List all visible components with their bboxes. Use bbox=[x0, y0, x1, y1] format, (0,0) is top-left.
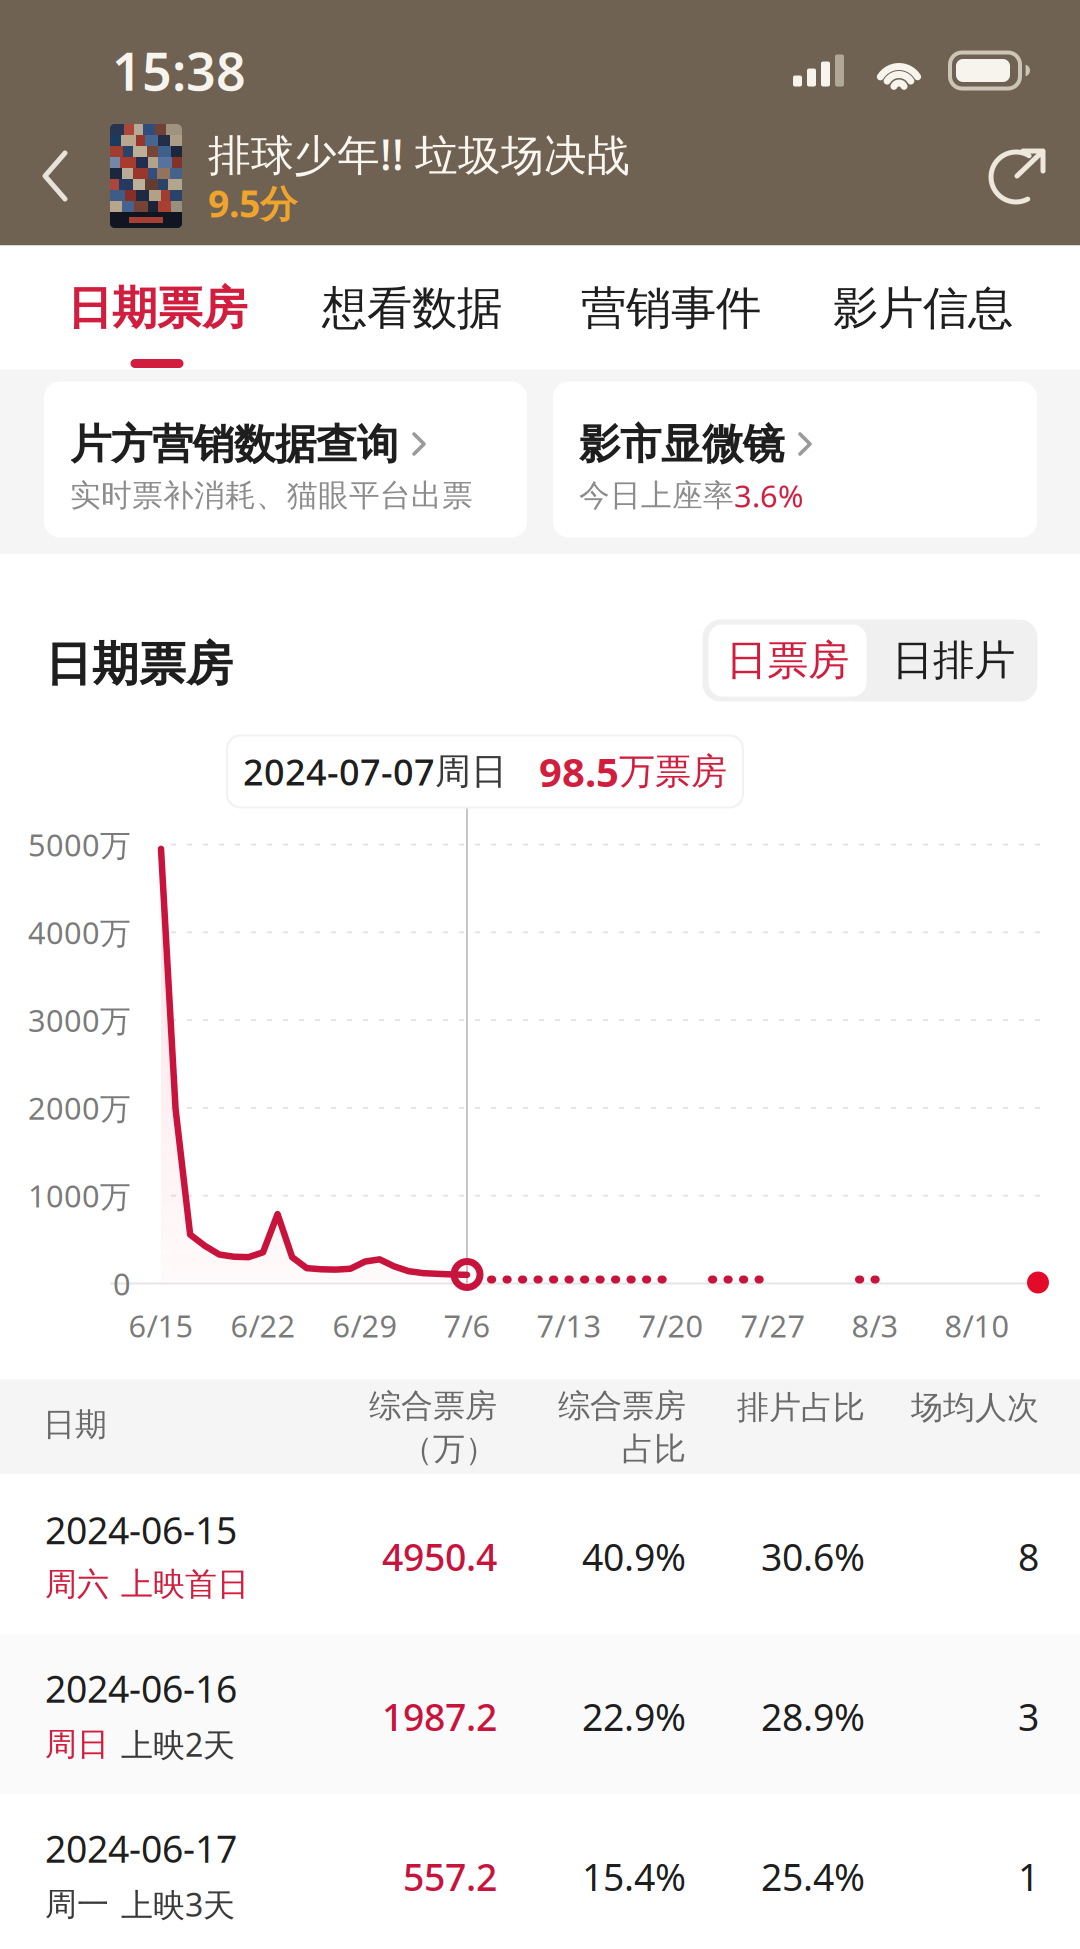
staticText: 15:38 bbox=[112, 36, 246, 105]
staticText: 2000万 bbox=[28, 1087, 131, 1128]
staticText: 日期票房 bbox=[67, 281, 247, 336]
button[interactable]: 2024-06-16 bbox=[0, 1634, 1080, 1794]
staticText: 上映首日 bbox=[121, 1565, 249, 1604]
staticText: 想看数据 bbox=[322, 281, 502, 336]
staticText: 周一 bbox=[45, 1885, 109, 1924]
staticText: 1000万 bbox=[28, 1175, 131, 1216]
staticText: 25.4% bbox=[761, 1852, 865, 1901]
staticText: 9.5分 bbox=[208, 178, 297, 228]
button[interactable]: 片方营销数据查询 bbox=[44, 381, 527, 537]
button[interactable]: 返回 bbox=[0, 106, 110, 245]
button[interactable]: 影片信息 bbox=[843, 245, 1003, 369]
staticText: 今日上座率 bbox=[579, 477, 734, 514]
staticText: 排片占比 bbox=[737, 1388, 865, 1427]
staticText: 7/27 bbox=[740, 1305, 805, 1346]
staticText: 2024-06-17 bbox=[45, 1823, 237, 1873]
staticText: 4950.4 bbox=[382, 1532, 497, 1581]
staticText: 万票房 bbox=[619, 749, 727, 794]
staticText: 7/13 bbox=[536, 1305, 601, 1346]
staticText: 片方营销数据查询 bbox=[70, 419, 398, 470]
staticText: 营销事件 bbox=[581, 281, 761, 336]
button[interactable]: 2024-06-15 bbox=[0, 1474, 1080, 1634]
staticText: 8/10 bbox=[944, 1305, 1009, 1346]
staticText: 占比 bbox=[622, 1429, 686, 1469]
staticText: 4000万 bbox=[28, 912, 131, 953]
staticText: 综合票房 bbox=[558, 1386, 686, 1425]
button[interactable]: 2024-06-17 bbox=[0, 1794, 1080, 1949]
staticText: 98.5 bbox=[539, 745, 619, 798]
staticText: 7/6 bbox=[443, 1305, 490, 1346]
button[interactable]: 日期票房 bbox=[77, 245, 237, 369]
staticText: 2024-06-15 bbox=[45, 1505, 237, 1555]
staticText: 3.6% bbox=[734, 475, 803, 516]
staticText: 7/20 bbox=[638, 1305, 703, 1346]
staticText: 上映3天 bbox=[121, 1883, 235, 1925]
staticText: 2024-07-07 bbox=[243, 748, 435, 795]
button[interactable]: 分享 bbox=[962, 106, 1080, 245]
staticText: 22.9% bbox=[582, 1692, 686, 1741]
staticText: 影片信息 bbox=[833, 281, 1013, 336]
staticText: 实时票补消耗、猫眼平台出票 bbox=[70, 477, 473, 514]
staticText: 综合票房 bbox=[369, 1386, 497, 1425]
staticText: 8/3 bbox=[851, 1305, 898, 1346]
staticText: 场均人次 bbox=[911, 1388, 1039, 1427]
staticText: 日排片 bbox=[892, 635, 1015, 686]
staticText: 3000万 bbox=[28, 1000, 131, 1040]
staticText: 日票房 bbox=[726, 635, 849, 686]
staticText: 40.9% bbox=[582, 1532, 686, 1581]
staticText: 影市显微镜 bbox=[579, 419, 784, 470]
staticText: 1 bbox=[1018, 1852, 1039, 1901]
staticText: 排球少年!! 垃圾场决战 bbox=[208, 126, 630, 182]
button[interactable]: 日排片 bbox=[874, 624, 1033, 696]
staticText: 3 bbox=[1018, 1692, 1039, 1741]
staticText: 28.9% bbox=[761, 1692, 865, 1741]
staticText: 上映2天 bbox=[121, 1723, 235, 1765]
staticText: 日期票房 bbox=[45, 636, 233, 693]
staticText: 周日 bbox=[435, 749, 507, 794]
staticText: 557.2 bbox=[403, 1852, 497, 1901]
staticText: 6/29 bbox=[332, 1305, 397, 1346]
button[interactable]: 想看数据 bbox=[332, 245, 492, 369]
staticText: （万） bbox=[401, 1429, 497, 1469]
button[interactable]: 日票房 bbox=[708, 624, 866, 696]
staticText: 日期 bbox=[43, 1405, 107, 1444]
staticText: 30.6% bbox=[761, 1532, 865, 1581]
staticText: 8 bbox=[1018, 1532, 1039, 1581]
staticText: 6/22 bbox=[230, 1305, 295, 1346]
button[interactable]: 营销事件 bbox=[591, 245, 751, 369]
staticText: 15.4% bbox=[582, 1852, 686, 1901]
staticText: 0 bbox=[113, 1263, 131, 1304]
staticText: 5000万 bbox=[28, 824, 131, 865]
staticText: 周六 bbox=[45, 1565, 109, 1604]
staticText: 6/15 bbox=[128, 1305, 193, 1346]
staticText: 1987.2 bbox=[382, 1692, 497, 1741]
button[interactable]: 影市显微镜 bbox=[553, 381, 1037, 537]
staticText: 2024-06-16 bbox=[45, 1663, 237, 1713]
staticText: 周日 bbox=[45, 1725, 109, 1764]
